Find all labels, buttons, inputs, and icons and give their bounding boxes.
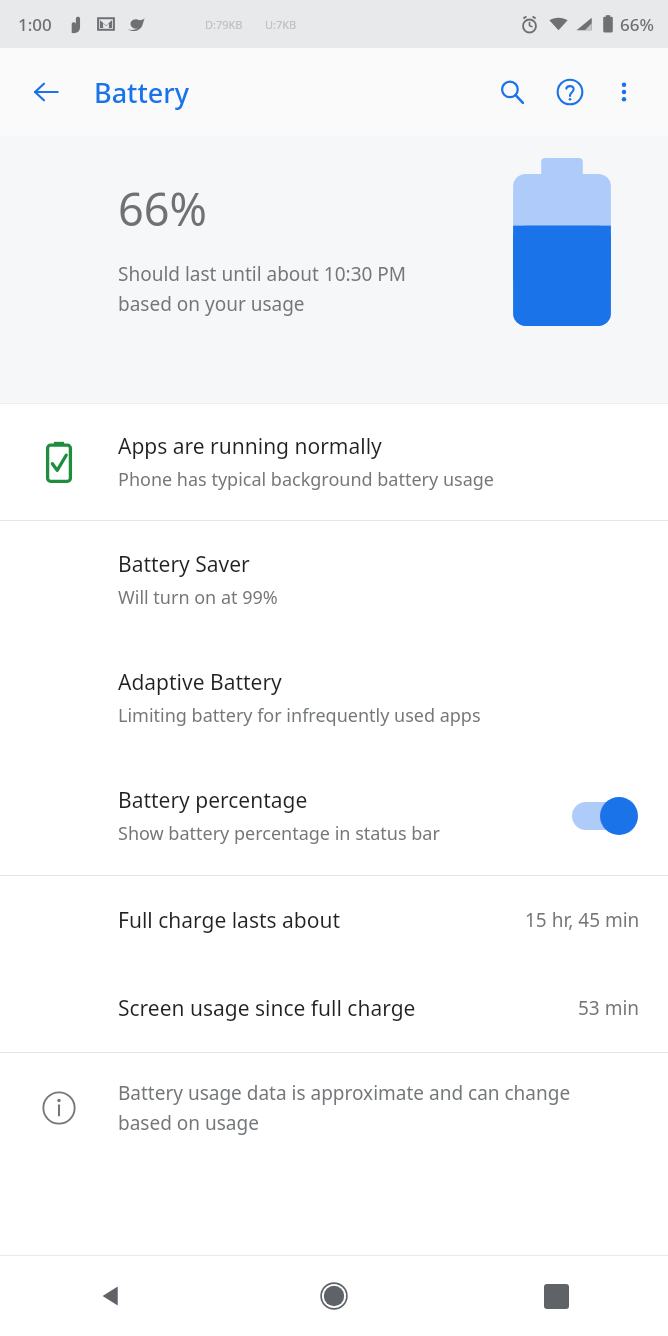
button[interactable]: Battery Saver <box>0 521 668 639</box>
staticText: Battery usage data is approximate and ca… <box>118 1080 571 1106</box>
staticText: 66% <box>118 178 207 239</box>
staticText: Screen usage since full charge <box>118 994 578 1023</box>
staticText: Will turn on at 99% <box>118 585 278 610</box>
staticText: 15 hr, 45 min <box>525 907 640 933</box>
staticText: based on your usage <box>118 291 305 317</box>
staticText: Apps are running normally <box>118 432 382 461</box>
button[interactable]: Home <box>222 1256 445 1336</box>
button[interactable]: Adaptive Battery <box>0 639 668 757</box>
staticText: 66% <box>620 13 654 36</box>
staticText: Limiting battery for infrequently used a… <box>118 703 481 728</box>
staticText: Phone has typical background battery usa… <box>118 467 494 492</box>
staticText: Battery percentage <box>118 786 308 815</box>
button[interactable]: Search <box>488 68 536 116</box>
staticText: Should last until about 10:30 PM <box>118 261 407 287</box>
button[interactable]: Back <box>22 68 70 116</box>
staticText: D:79KB <box>205 17 243 32</box>
staticText: U:7KB <box>265 17 297 32</box>
staticText: based on usage <box>118 1110 259 1136</box>
button[interactable]: Apps are running normally <box>0 404 668 520</box>
staticText: 1:00 <box>18 13 52 36</box>
button[interactable]: Help <box>546 68 594 116</box>
button[interactable]: Full charge lasts about <box>0 876 668 964</box>
staticText: Show battery percentage in status bar <box>118 821 440 846</box>
staticText: Battery Saver <box>118 550 250 579</box>
button[interactable]: More options <box>600 68 648 116</box>
staticText: 53 min <box>578 995 640 1021</box>
button[interactable]: Recent apps <box>445 1256 668 1336</box>
staticText: Full charge lasts about <box>118 906 525 935</box>
staticText: Adaptive Battery <box>118 668 282 697</box>
button[interactable]: Back <box>0 1256 222 1336</box>
button[interactable]: Screen usage since full charge <box>0 964 668 1052</box>
button[interactable]: Battery percentage <box>0 757 668 875</box>
staticText: Battery <box>94 74 189 111</box>
